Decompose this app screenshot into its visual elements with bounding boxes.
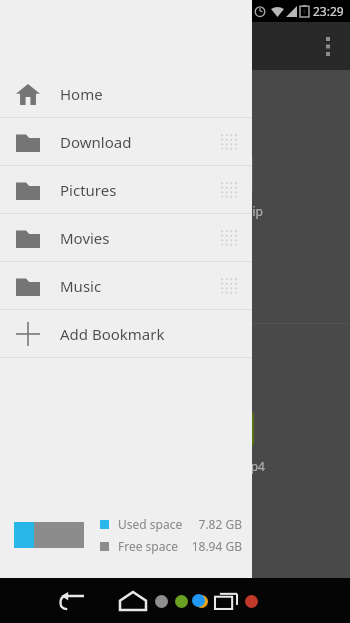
staticText: Movies (60, 228, 110, 248)
button[interactable]: More options (306, 24, 350, 68)
button[interactable]: archive.zip (0, 70, 350, 323)
button[interactable]: Download (0, 118, 252, 165)
button[interactable]: movie.mp4 (0, 324, 350, 578)
button[interactable]: Add Bookmark (0, 310, 252, 357)
button[interactable]: Pictures (0, 166, 252, 213)
button[interactable]: Home (113, 581, 153, 621)
staticText: Add Bookmark (60, 324, 165, 344)
staticText: Used space (118, 516, 183, 532)
button[interactable]: Back (52, 581, 92, 621)
staticText: movie.mp4 (202, 458, 265, 474)
staticText: Music (60, 276, 102, 296)
button[interactable]: Movies (0, 214, 252, 261)
button[interactable]: Music (0, 262, 252, 309)
staticText: Free space (118, 538, 178, 554)
staticText: 23:29 (313, 3, 344, 19)
staticText: 18.94 GB (186, 538, 242, 554)
staticText: Download (60, 132, 132, 152)
staticText: 7.82 GB (191, 516, 242, 532)
staticText: archive.zip (203, 203, 263, 219)
staticText: Home (60, 84, 103, 104)
button[interactable]: Home (0, 70, 252, 117)
staticText: Pictures (60, 180, 117, 200)
button[interactable]: Recent apps (209, 584, 243, 618)
